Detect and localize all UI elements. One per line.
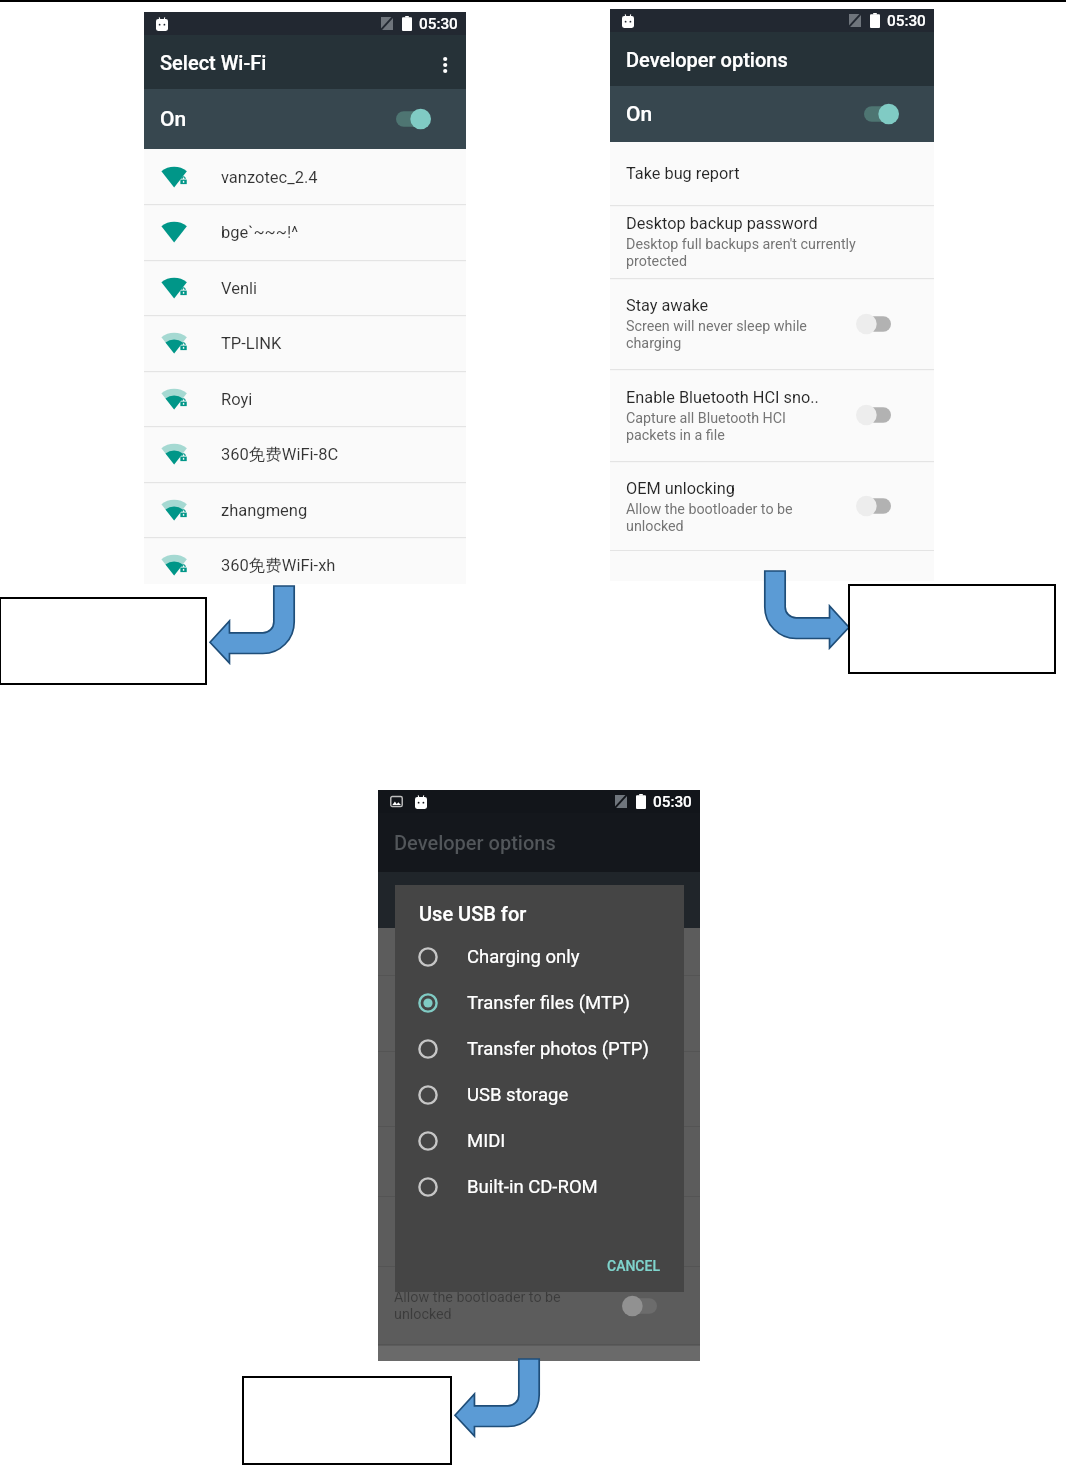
staticText: Enable Bluetooth HCI sno..	[626, 388, 819, 407]
staticText: Allow the bootloader to be unlocked	[626, 501, 793, 534]
staticText: 05:30	[653, 793, 692, 811]
button[interactable]: OEM unlocking	[610, 461, 934, 551]
button[interactable]: Venli	[144, 260, 466, 316]
staticText: MIDI	[467, 1130, 506, 1152]
staticText: Stay awake	[626, 296, 709, 315]
staticText: USB storage	[467, 1084, 569, 1106]
button[interactable]: Desktop backup password	[610, 205, 934, 278]
button[interactable]: Toggle on	[864, 103, 899, 125]
staticText: Developer options	[626, 48, 788, 71]
staticText: CANCEL	[607, 1258, 660, 1274]
button[interactable]: Toggle off	[856, 495, 891, 517]
staticText: bge`~~~!^	[221, 223, 299, 242]
button[interactable]: Charging only	[395, 934, 684, 980]
staticText: Select Wi-Fi	[160, 51, 267, 74]
button[interactable]: CANCEL	[601, 1253, 666, 1279]
button[interactable]	[243, 1377, 451, 1464]
button[interactable]: TP-LINK	[144, 315, 466, 371]
staticText: 05:30	[419, 15, 458, 33]
staticText: Charging only	[467, 946, 580, 968]
button[interactable]	[0, 598, 206, 684]
staticText: Built-in CD-ROM	[467, 1176, 598, 1198]
staticText: Developer options	[394, 831, 556, 854]
staticText: vanzotec_2.4	[221, 168, 318, 187]
staticText: Screen will never sleep while charging	[626, 318, 807, 351]
button[interactable]: Royi	[144, 371, 466, 427]
staticText: Take bug report	[626, 164, 740, 183]
button[interactable]: USB storage	[395, 1072, 684, 1118]
staticText: 05:30	[887, 12, 926, 30]
staticText: Desktop backup password	[626, 214, 818, 233]
button[interactable]: On	[610, 86, 934, 142]
staticText: OEM unlocking	[626, 479, 735, 498]
button[interactable]: Transfer photos (PTP)	[395, 1026, 684, 1072]
button[interactable]: 360免费WiFi-8C	[144, 426, 466, 482]
button[interactable]: Toggle off	[856, 313, 891, 335]
button[interactable]: zhangmeng	[144, 482, 466, 538]
button[interactable]: MIDI	[395, 1118, 684, 1164]
staticText: Venli	[221, 279, 258, 298]
staticText: Allow the bootloader to be unlocked	[394, 1289, 622, 1322]
staticText: Use USB for	[419, 902, 527, 925]
button[interactable]: Developer options	[610, 32, 934, 86]
button[interactable]: 360免费WiFi-xh	[144, 537, 466, 593]
button[interactable]	[849, 585, 1055, 673]
button[interactable]: Toggle on	[396, 108, 431, 130]
staticText: Transfer files (MTP)	[467, 992, 631, 1014]
staticText: Capture all Bluetooth HCI packets in a f…	[626, 410, 786, 443]
button[interactable]: Toggle off	[856, 404, 891, 426]
button[interactable]: bge`~~~!^	[144, 204, 466, 260]
button[interactable]: Enable Bluetooth HCI sno..	[610, 369, 934, 461]
button[interactable]: vanzotec_2.4	[144, 149, 466, 205]
staticText: 360免费WiFi-8C	[221, 444, 339, 465]
button[interactable]: More options	[422, 35, 466, 89]
staticText: Desktop full backups aren't currently pr…	[626, 236, 856, 269]
staticText: On	[626, 102, 653, 127]
staticText: 360免费WiFi-xh	[221, 555, 336, 576]
button[interactable]: Built-in CD-ROM	[395, 1164, 684, 1210]
staticText: zhangmeng	[221, 501, 308, 520]
staticText: On	[160, 107, 187, 132]
button[interactable]: On	[144, 89, 466, 149]
staticText: Royi	[221, 390, 253, 409]
button[interactable]: Take bug report	[610, 142, 934, 205]
staticText: Transfer photos (PTP)	[467, 1038, 649, 1060]
button[interactable]: Select Wi-Fi	[144, 35, 466, 89]
button[interactable]: Transfer files (MTP)	[395, 980, 684, 1026]
staticText: TP-LINK	[221, 334, 282, 353]
button[interactable]: Stay awake	[610, 278, 934, 369]
